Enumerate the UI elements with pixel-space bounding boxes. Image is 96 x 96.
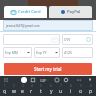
- button[interactable]: PayPal: [49, 6, 92, 18]
- button[interactable]: Credit Card: [4, 6, 47, 18]
- button[interactable]: 8: [66, 84, 76, 96]
- staticText: i: [70, 88, 72, 95]
- button[interactable]: 9: [76, 84, 86, 96]
- staticText: u: [59, 88, 63, 95]
- staticText: q: [3, 88, 7, 95]
- button[interactable]: Settings: [63, 77, 69, 83]
- button[interactable]: 2: [9, 84, 18, 96]
- button[interactable]: Voice input: [87, 77, 93, 83]
- staticText: 0: [90, 84, 92, 88]
- button[interactable]: jessica3647@gmail.com: [6, 20, 90, 31]
- staticText: 5: [40, 84, 42, 88]
- button[interactable]: Exp YY: [36, 47, 58, 58]
- button[interactable]: 5: [36, 84, 46, 96]
- staticText: y: [50, 88, 53, 95]
- staticText: CVV: [64, 37, 71, 42]
- button[interactable]: 1: [0, 84, 9, 96]
- button[interactable]: Apps: [3, 77, 9, 83]
- staticText: Exp MM: [5, 50, 18, 55]
- staticText: 6: [50, 84, 52, 88]
- button[interactable]: [3, 34, 60, 45]
- staticText: p: [89, 88, 93, 95]
- staticText: 8: [70, 84, 72, 88]
- staticText: r: [30, 88, 33, 95]
- button[interactable]: Start my trial: [4, 63, 92, 75]
- button[interactable]: 0: [86, 84, 96, 96]
- staticText: PayPal: [67, 9, 81, 15]
- staticText: 2: [13, 84, 15, 88]
- staticText: t: [40, 88, 42, 95]
- staticText: w: [12, 88, 16, 95]
- button[interactable]: CVV: [64, 34, 91, 45]
- staticText: jessica3647@gmail.com: [6, 24, 40, 28]
- button[interactable]: 4123: [64, 47, 91, 58]
- staticText: Credit Card: [18, 9, 41, 15]
- staticText: 9: [80, 84, 82, 88]
- button[interactable]: Exp MM: [5, 47, 30, 58]
- button[interactable]: 3: [18, 84, 27, 96]
- staticText: o: [79, 88, 83, 95]
- staticText: 3: [22, 84, 24, 88]
- button[interactable]: 6: [46, 84, 56, 96]
- staticText: 4123: [64, 50, 72, 55]
- button[interactable]: Clipboard: [30, 77, 36, 83]
- button[interactable]: More options: [76, 77, 82, 83]
- staticText: 7: [60, 84, 62, 88]
- button[interactable]: 4: [27, 84, 36, 96]
- button[interactable]: 7: [56, 84, 66, 96]
- staticText: 1: [4, 84, 6, 88]
- staticText: e: [21, 88, 24, 95]
- staticText: GIF: [40, 78, 47, 83]
- staticText: 4: [31, 84, 33, 88]
- staticText: Exp YY: [36, 50, 47, 55]
- button[interactable]: Google: [21, 77, 27, 83]
- button[interactable]: Emoji: [54, 77, 60, 83]
- staticText: Start my trial: [34, 66, 62, 72]
